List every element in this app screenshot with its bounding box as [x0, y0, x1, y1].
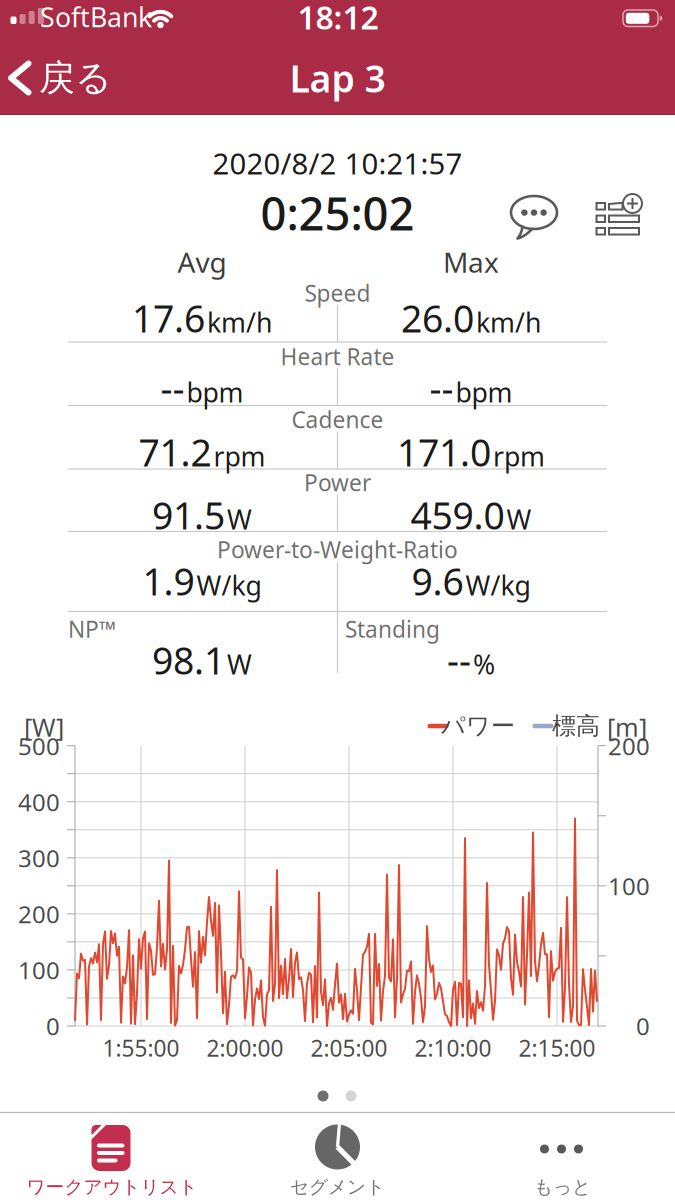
staticText: Max — [443, 243, 499, 281]
staticText: Avg — [177, 243, 226, 281]
staticText: 標高 — [552, 711, 600, 741]
button[interactable]: ワークアウトリスト — [0, 1113, 225, 1200]
staticText: 200 — [608, 730, 650, 762]
staticText: 300 — [18, 842, 60, 874]
staticText: 500 — [18, 730, 60, 762]
staticText: 100 — [18, 954, 60, 986]
staticText: 459.0 — [410, 490, 504, 540]
staticText: 1.9 — [142, 556, 194, 606]
staticText: 400 — [18, 786, 60, 818]
staticText: Heart Rate — [280, 341, 394, 371]
staticText: 98.1 — [152, 635, 225, 685]
staticText: Lap 3 — [289, 53, 385, 103]
staticText: 26.0 — [401, 293, 474, 343]
button[interactable]: Add — [595, 194, 649, 240]
staticText: bpm — [186, 374, 243, 410]
staticText: 2:05:00 — [310, 1033, 387, 1063]
button[interactable]: Comment — [508, 195, 564, 245]
staticText: km/h — [476, 304, 541, 340]
staticText: 2:15:00 — [518, 1033, 595, 1063]
staticText: bpm — [455, 374, 512, 410]
staticText: 200 — [18, 898, 60, 930]
staticText: セグメント — [290, 1175, 385, 1198]
staticText: W — [227, 501, 252, 537]
staticText: rpm — [213, 438, 265, 474]
staticText: 2:10:00 — [414, 1033, 491, 1063]
staticText: パワー — [441, 711, 515, 741]
staticText: ワークアウトリスト — [26, 1175, 197, 1198]
staticText: Standing — [345, 614, 440, 644]
staticText: 0:25:02 — [260, 183, 414, 243]
staticText: 0 — [46, 1010, 60, 1042]
staticText: % — [473, 646, 495, 682]
staticText: km/h — [207, 304, 272, 340]
staticText: Power-to-Weight-Ratio — [217, 534, 458, 564]
button[interactable]: セグメント — [225, 1113, 450, 1200]
staticText: 171.0 — [397, 427, 491, 477]
staticText: 100 — [608, 870, 650, 902]
staticText: [m] — [607, 710, 647, 744]
staticText: [W] — [24, 710, 64, 744]
staticText: もっと — [534, 1175, 591, 1198]
staticText: 9.6 — [411, 556, 463, 606]
staticText: 17.6 — [132, 293, 205, 343]
staticText: Cadence — [291, 404, 383, 434]
staticText: SoftBank — [40, 0, 152, 35]
staticText: -- — [429, 363, 453, 413]
staticText: -- — [447, 635, 471, 685]
staticText: W — [227, 646, 252, 682]
staticText: W/kg — [196, 567, 261, 603]
button[interactable]: 戻る — [8, 56, 112, 100]
staticText: Power — [304, 467, 371, 497]
staticText: W — [506, 501, 531, 537]
staticText: -- — [160, 363, 184, 413]
staticText: 18:12 — [297, 0, 378, 38]
staticText: 1:55:00 — [102, 1033, 179, 1063]
staticText: 戻る — [39, 56, 112, 100]
staticText: rpm — [493, 438, 545, 474]
staticText: NP™ — [68, 614, 117, 644]
staticText: 91.5 — [152, 490, 225, 540]
staticText: 0 — [636, 1010, 650, 1042]
button[interactable]: もっと — [450, 1113, 675, 1200]
staticText: 2:00:00 — [206, 1033, 283, 1063]
staticText: 2020/8/2 10:21:57 — [212, 143, 462, 182]
staticText: Speed — [304, 278, 370, 308]
staticText: W/kg — [465, 567, 530, 603]
staticText: 71.2 — [138, 427, 211, 477]
